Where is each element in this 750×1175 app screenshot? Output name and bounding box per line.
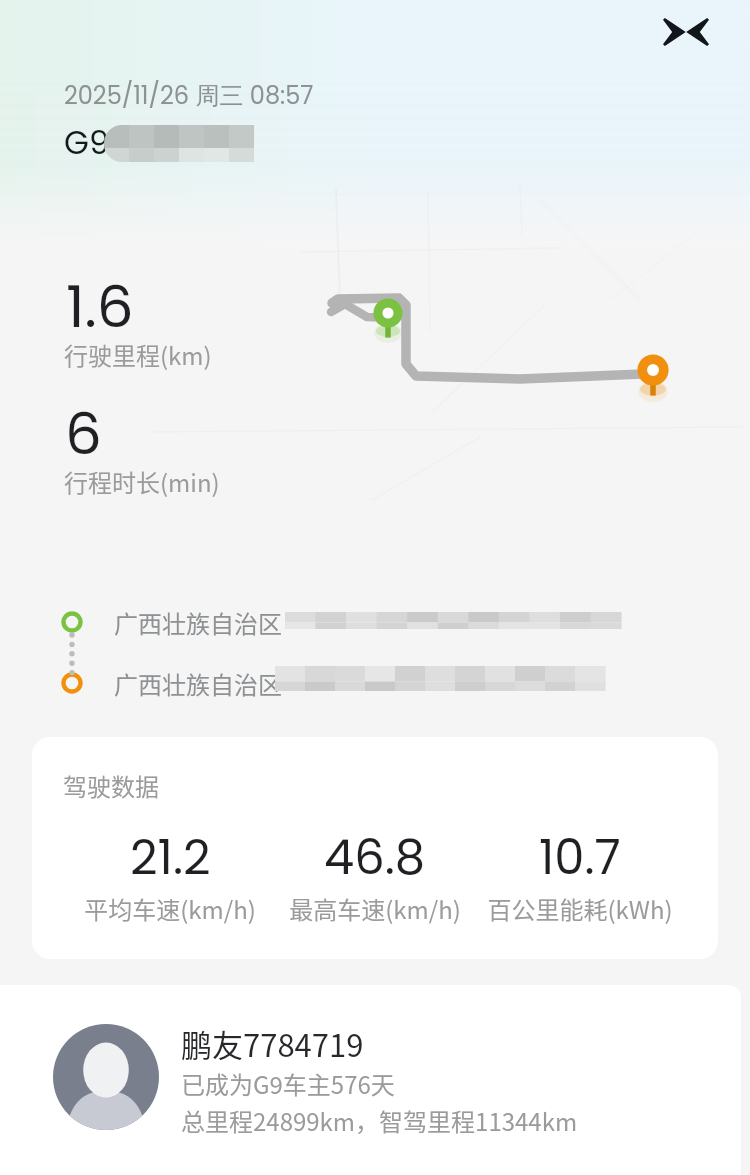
staticText: 行程时长(min) [64, 464, 220, 499]
staticText: 行驶里程(km) [64, 337, 212, 372]
button[interactable]: 鹏友7784719 [0, 985, 741, 1175]
button[interactable]: XPeng logo [663, 18, 709, 46]
staticText: 1.6 [66, 266, 134, 347]
staticText: G9 [64, 120, 110, 165]
staticText: 已成为G9车主576天 [181, 1066, 395, 1101]
staticText: 总里程24899km，智驾里程11344km [181, 1103, 578, 1138]
staticText: 最高车速(km/h) [289, 891, 461, 926]
staticText: 广西壮族自治区 [114, 666, 282, 701]
staticText: 平均车速(km/h) [84, 891, 256, 926]
staticText: 21.2 [130, 824, 211, 891]
staticText: 驾驶数据 [63, 768, 159, 803]
staticText: 2025/11/26 周三 08:57 [64, 79, 314, 113]
staticText: 10.7 [539, 824, 621, 891]
staticText: 鹏友7784719 [181, 1021, 364, 1066]
staticText: 百公里能耗(kWh) [487, 891, 673, 926]
staticText: 46.8 [324, 824, 426, 891]
button[interactable]: 驾驶数据 [32, 737, 718, 959]
staticText: 6 [65, 393, 102, 474]
staticText: 广西壮族自治区 [114, 605, 282, 640]
